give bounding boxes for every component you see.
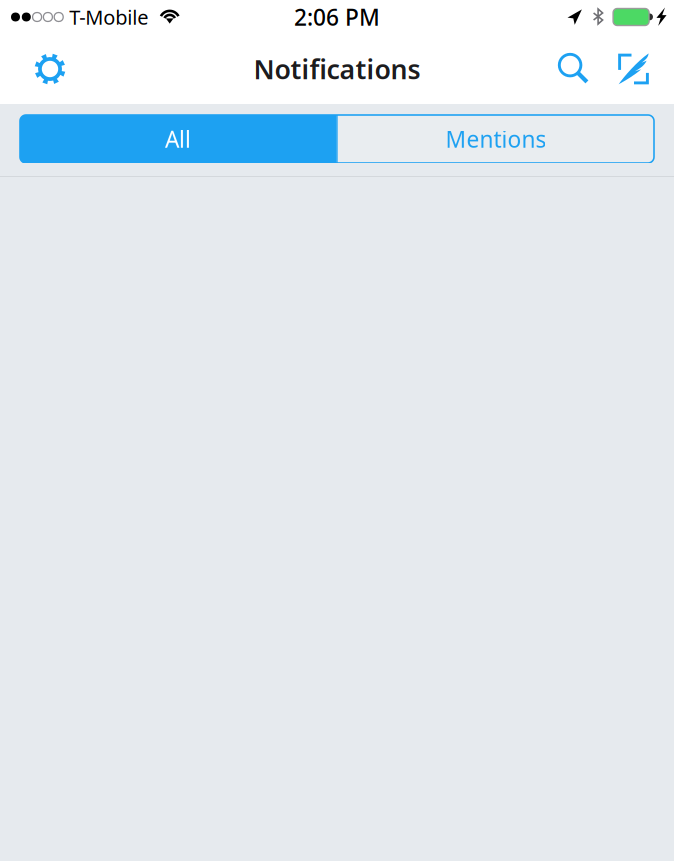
button[interactable]: Mentions (338, 115, 654, 163)
button[interactable]: Compose (603, 35, 664, 103)
button[interactable]: Search (545, 35, 603, 103)
staticText: T-Mobile (69, 4, 148, 30)
staticText: 2:06 PM (294, 2, 380, 32)
staticText: Mentions (445, 124, 546, 154)
button[interactable]: Settings (18, 35, 82, 103)
staticText: Notifications (253, 51, 420, 87)
staticText: All (165, 124, 191, 154)
button[interactable]: All (20, 115, 336, 163)
